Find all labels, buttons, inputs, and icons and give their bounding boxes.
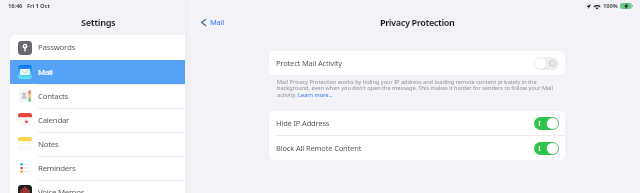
staticText: Block All Remote Content (276, 143, 362, 153)
button[interactable]: Contacts (10, 84, 185, 108)
staticText: Fri 1 Oct (27, 2, 50, 10)
button[interactable]: Passwords (10, 35, 185, 60)
button[interactable]: On (534, 142, 559, 155)
staticText: Mail (210, 17, 225, 27)
staticText: Mail (38, 67, 53, 78)
button[interactable]: Hide IP Address (269, 111, 565, 135)
staticText: 16:46 (8, 2, 23, 10)
staticText: Notes (38, 139, 59, 150)
button[interactable]: Mail (201, 17, 225, 27)
button[interactable]: Voice Memos (10, 180, 185, 193)
staticText: 100% (603, 2, 618, 10)
button[interactable]: Notes (10, 132, 185, 156)
staticText: Settings (81, 16, 116, 29)
button[interactable]: Off (534, 57, 559, 70)
button[interactable]: Calendar (10, 108, 185, 132)
staticText: Protect Mail Activity (276, 58, 342, 68)
staticText: Mail Privacy Protection works by hiding … (277, 78, 562, 99)
staticText: Voice Memos (38, 187, 85, 193)
staticText: Passwords (38, 42, 75, 53)
staticText: Hide IP Address (276, 118, 330, 128)
button[interactable]: On (534, 117, 559, 130)
button[interactable]: Reminders (10, 156, 185, 180)
button[interactable]: Protect Mail Activity (269, 51, 565, 75)
staticText: Calendar (38, 115, 70, 126)
staticText: Reminders (38, 163, 76, 174)
staticText: Privacy Protection (380, 16, 455, 28)
button[interactable]: Mail (10, 60, 185, 84)
staticText: Contacts (38, 91, 69, 102)
button[interactable]: Block All Remote Content (269, 136, 565, 160)
